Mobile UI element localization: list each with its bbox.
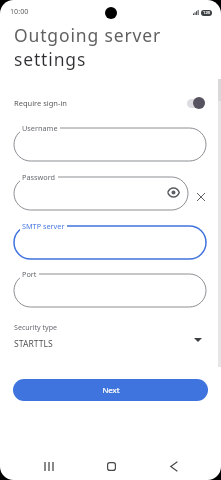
button[interactable]: Show password <box>165 184 182 201</box>
staticText: 10:00 <box>10 6 29 16</box>
staticText: settings <box>14 47 87 71</box>
button[interactable]: Security type <box>0 316 221 352</box>
staticText: Port <box>22 269 37 279</box>
button[interactable]: Recent apps <box>37 454 61 478</box>
button[interactable]: Back <box>161 454 185 478</box>
staticText: Username <box>22 123 58 133</box>
button[interactable]: Clear password <box>193 189 208 204</box>
button[interactable]: Port <box>14 274 206 307</box>
staticText: Password <box>22 172 56 182</box>
staticText: SMTP server <box>22 221 65 231</box>
button[interactable]: Password <box>14 177 188 210</box>
button[interactable]: SMTP server <box>14 226 206 259</box>
staticText: 120 <box>203 10 211 16</box>
staticText: Outgoing server <box>14 23 162 47</box>
staticText: Next <box>102 385 120 396</box>
button[interactable]: Next <box>13 379 208 401</box>
staticText: Require sign-in <box>14 98 67 108</box>
button[interactable]: Home <box>99 454 123 478</box>
staticText: STARTTLS <box>14 338 53 350</box>
button[interactable]: Require sign-in <box>187 96 205 110</box>
staticText: Security type <box>14 322 58 332</box>
button[interactable]: Username <box>14 128 206 161</box>
button[interactable]: Require sign-in <box>0 92 221 114</box>
